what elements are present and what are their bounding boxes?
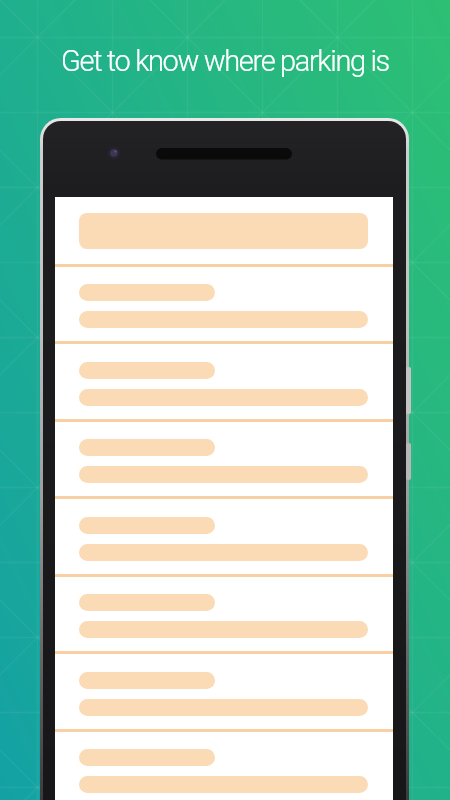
- staticText: Get to know where parking is: [61, 44, 389, 78]
- button[interactable]: [55, 422, 393, 497]
- button[interactable]: [79, 213, 368, 249]
- button[interactable]: [55, 345, 393, 420]
- button[interactable]: [55, 267, 393, 342]
- button[interactable]: [55, 500, 393, 575]
- button[interactable]: [55, 732, 393, 800]
- button[interactable]: [55, 655, 393, 730]
- button[interactable]: [55, 577, 393, 652]
